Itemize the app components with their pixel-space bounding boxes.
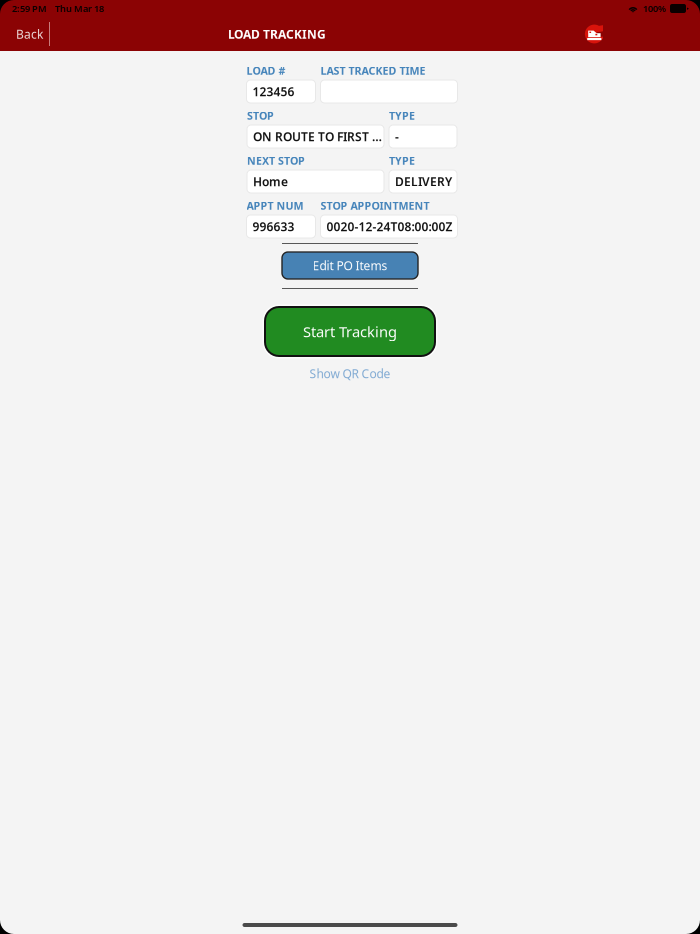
staticText: 0020-12-24T08:00:00Z	[326, 218, 452, 234]
button[interactable]: Show QR Code	[303, 364, 396, 382]
button[interactable]: Start Tracking	[262, 304, 437, 358]
staticText: Thu Mar 18	[55, 2, 104, 15]
staticText: STOP APPOINTMENT	[320, 198, 429, 213]
staticText: LAST TRACKED TIME	[320, 63, 425, 78]
staticText: LOAD #	[246, 63, 285, 78]
staticText: 996633	[252, 218, 294, 234]
staticText: NEXT STOP	[247, 153, 305, 168]
staticText: 100%	[643, 2, 666, 15]
staticText: Start Tracking	[303, 322, 397, 341]
staticText: Home	[253, 173, 288, 189]
staticText: LOAD TRACKING	[228, 26, 326, 42]
staticText: ON ROUTE TO FIRST ST…	[253, 128, 382, 144]
staticText: -	[395, 128, 399, 144]
staticText: 2:59 PM	[12, 2, 47, 15]
staticText: 123456	[252, 83, 294, 99]
staticText: Edit PO Items	[312, 257, 387, 273]
staticText: Show QR Code	[309, 365, 390, 381]
staticText: TYPE	[389, 108, 415, 123]
staticText: APPT NUM	[246, 198, 303, 213]
staticText: DELIVERY	[395, 173, 452, 189]
staticText: Back	[16, 26, 43, 42]
button[interactable]: Edit PO Items	[282, 252, 418, 279]
staticText: TYPE	[389, 153, 415, 168]
button[interactable]: Back	[0, 17, 49, 51]
button[interactable]: Company logo	[578, 17, 612, 51]
staticText: STOP	[247, 108, 274, 123]
